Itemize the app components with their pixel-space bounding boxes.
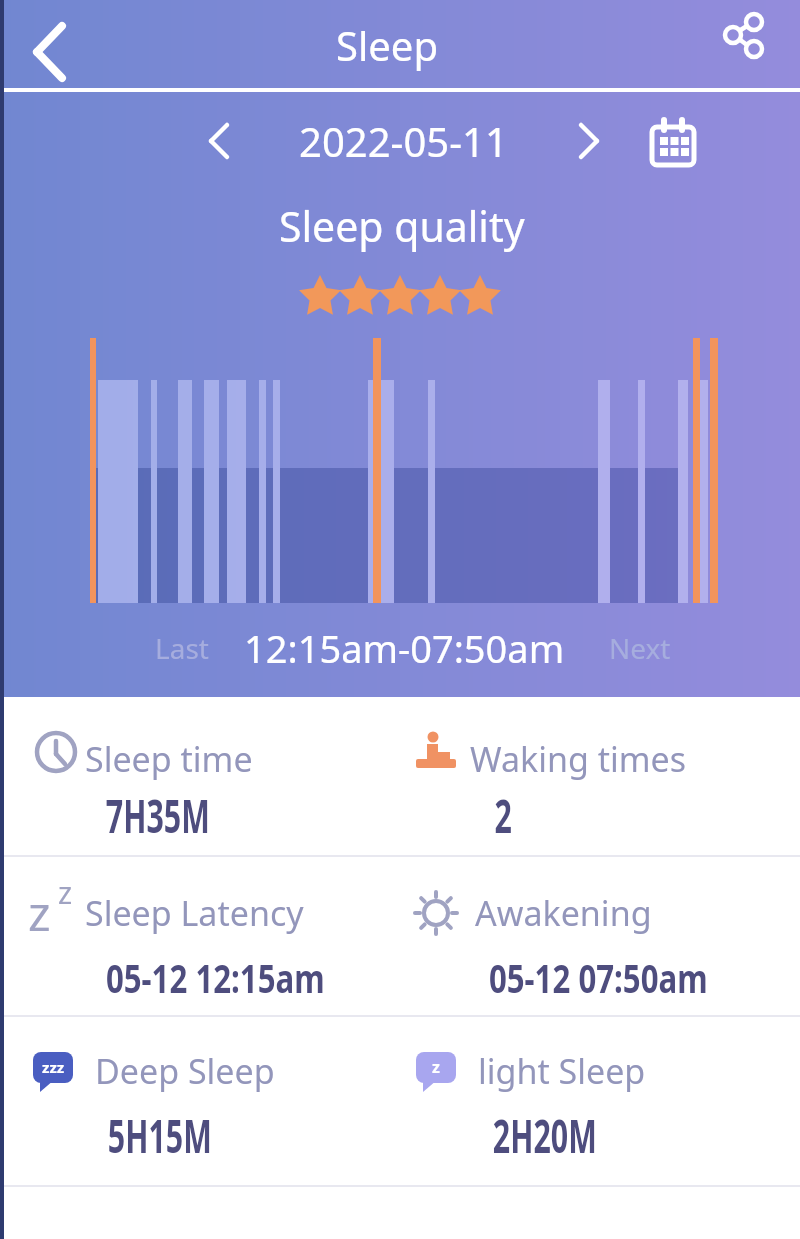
staticText: 05-12 12:15am [106, 950, 325, 1004]
staticText: Awakening [475, 890, 652, 936]
staticText: 05-12 07:50am [489, 950, 708, 1004]
button[interactable]: Last [122, 628, 242, 668]
staticText: 2022-05-11 [299, 114, 508, 168]
staticText: Last [155, 629, 209, 667]
button[interactable] [640, 110, 706, 170]
staticText: Deep Sleep [95, 1048, 275, 1094]
staticText: Sleep quality [279, 198, 525, 254]
staticText: 5H15M [108, 1104, 212, 1160]
staticText: z [432, 1056, 440, 1078]
button[interactable] [400, 700, 770, 850]
staticText: Sleep [336, 18, 438, 72]
staticText: 2H20M [493, 1104, 597, 1160]
staticText: z [28, 880, 51, 945]
staticText: Sleep time [85, 736, 253, 782]
button[interactable] [20, 700, 390, 850]
staticText: light Sleep [478, 1048, 646, 1094]
button[interactable] [190, 110, 250, 170]
staticText: Next [609, 629, 671, 667]
staticText: 12:15am-07:50am [244, 622, 565, 674]
button[interactable] [560, 110, 620, 170]
button[interactable]: Next [580, 628, 700, 668]
staticText: 2 [495, 784, 512, 840]
button[interactable] [710, 5, 780, 75]
staticText: z [58, 872, 73, 913]
staticText: Waking times [470, 736, 687, 782]
staticText: zzz [42, 1057, 65, 1077]
staticText: Sleep Latency [85, 890, 304, 936]
staticText: 7H35M [106, 784, 210, 840]
button[interactable] [10, 10, 90, 90]
